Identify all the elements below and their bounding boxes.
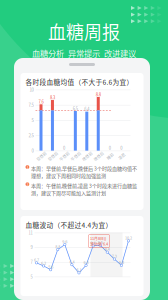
staticText: 2 <box>26 181 28 187</box>
staticText: 晚餐前 <box>81 153 93 159</box>
staticText: 10 <box>29 86 33 93</box>
staticText: 血糖周报 <box>48 18 120 44</box>
staticText: 8.8 <box>55 244 60 249</box>
staticText: 8.3 <box>50 94 55 100</box>
staticText: 11 <box>28 230 32 236</box>
staticText: 6.5 <box>73 105 78 111</box>
staticText: 8.8 <box>96 91 101 97</box>
staticText: 0 <box>31 147 33 154</box>
staticText: 午餐前 <box>58 153 70 159</box>
staticText: 0 <box>120 145 122 151</box>
staticText: 5 <box>31 117 33 123</box>
staticText: 6.4 <box>69 259 74 264</box>
staticText: 本周：早餐前,早餐后,晚餐后 3个时段血糖均值不理想，建议下周相同时段加强监测 <box>31 165 137 179</box>
staticText: 早餐前 <box>35 153 47 159</box>
staticText: 7.6 <box>38 99 43 105</box>
staticText: 6.2 <box>41 260 46 266</box>
staticText: 各时段血糖均值（不大于6.6为宜） <box>25 77 133 87</box>
staticText: 睡前 <box>106 153 114 159</box>
staticText: 午餐后 <box>70 153 82 159</box>
staticText: 晚餐后 <box>93 153 105 159</box>
staticText: 7.3 <box>112 253 117 259</box>
staticText: 6.7 <box>34 257 39 263</box>
staticText: 5 <box>30 274 32 280</box>
staticText: 0 <box>63 145 65 151</box>
staticText: 本周：午餐前,晚餐前,凌晨 3个时段未进行血糖监测，建议下周尽可能加入监测计划 <box>31 182 137 196</box>
staticText: 7 <box>30 259 32 265</box>
staticText: 10.2 <box>125 235 132 241</box>
staticText: 7.5 <box>28 102 33 108</box>
staticText: 11月8日() <box>90 235 106 241</box>
staticText: 6.3 <box>119 259 124 265</box>
staticText: 9.4 <box>91 240 96 246</box>
staticText: 9 <box>30 244 32 250</box>
staticText: 1 <box>26 164 28 170</box>
staticText: 血糖分析 异常提示 改进建议 <box>32 47 136 59</box>
staticText: 9.5 <box>98 239 103 245</box>
staticText: 血糖波动（不超过4.4为宜） <box>25 220 112 230</box>
staticText: 波动值 6.4 <box>90 241 108 247</box>
staticText: 2.5 <box>28 132 33 139</box>
staticText: 凌晨 <box>118 153 126 159</box>
staticText: 0 <box>109 145 111 151</box>
staticText: 6.4 <box>84 106 89 112</box>
staticText: 6.3 <box>83 259 88 265</box>
staticText: 5.6 <box>48 264 53 269</box>
staticText: 早餐后 <box>47 153 59 159</box>
staticText: 9.6 <box>62 239 67 244</box>
staticText: 5.1 <box>76 267 81 273</box>
staticText: 8.4 <box>105 246 110 252</box>
